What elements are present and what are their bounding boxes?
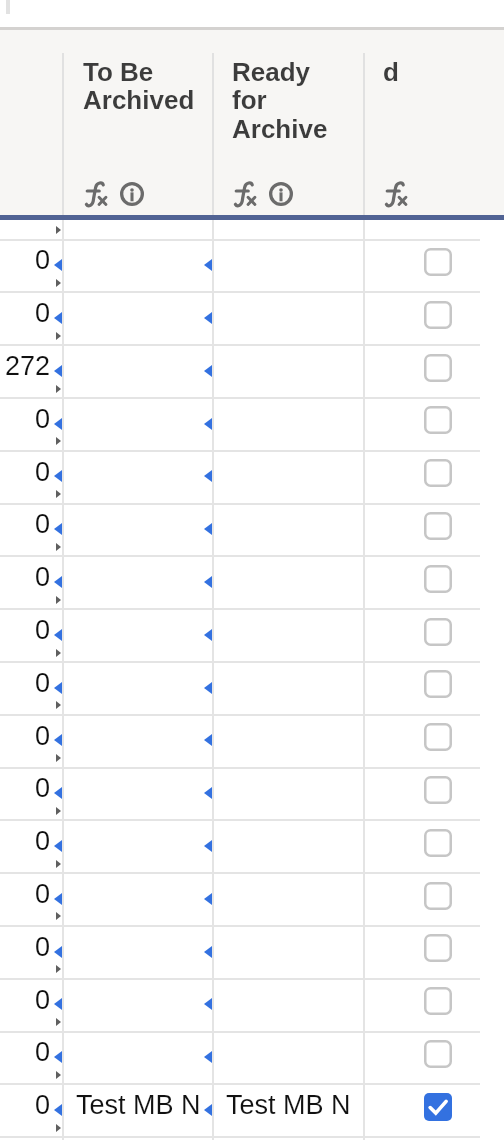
button[interactable]: Checkbox [424,723,452,751]
button[interactable]: Checkbox [424,670,452,698]
button[interactable]: Formula [235,182,256,206]
button[interactable]: Ready for Archive [232,57,328,144]
staticText: Test MB N [76,1090,201,1120]
button[interactable]: Checkbox [424,301,452,329]
staticText: 0 [35,245,51,275]
button[interactable]: Checkbox [424,459,452,487]
button[interactable]: Checkbox [424,248,452,276]
staticText: 0 [35,826,51,856]
button[interactable]: 0 [0,550,51,603]
staticText: 272 [5,351,51,381]
button[interactable]: To Be Archived [83,57,195,115]
staticText: 0 [35,562,51,592]
staticText: 0 [35,298,51,328]
button[interactable]: d [383,57,399,86]
staticText: d [383,57,399,86]
button[interactable]: 0 [0,814,51,867]
button[interactable]: Checkbox [424,882,452,910]
button[interactable]: Checkbox [424,512,452,540]
staticText: 0 [35,457,51,487]
button[interactable]: Checkbox [424,934,452,962]
button[interactable]: 0 [0,656,51,709]
staticText: 0 [35,985,51,1015]
staticText: 0 [35,509,51,539]
staticText: 0 [35,879,51,909]
staticText: 0 [35,721,51,751]
button[interactable]: 0 [0,286,51,339]
button[interactable]: 0 [0,709,51,762]
button[interactable]: 0 [0,233,51,286]
button[interactable]: Checkbox [424,565,452,593]
staticText: 0 [35,668,51,698]
button[interactable]: 0 [0,1025,51,1078]
staticText: 0 [35,404,51,434]
button[interactable]: Information [269,182,293,206]
button[interactable]: Information [120,182,144,206]
staticText: To Be Archived [83,57,195,115]
button[interactable]: Formula [386,182,407,206]
button[interactable]: 0 [0,497,51,550]
staticText: Test MB N [226,1090,351,1120]
staticText: 0 [35,1090,51,1120]
button[interactable]: Checkbox [424,987,452,1015]
button[interactable]: Checkbox [424,1040,452,1068]
staticText: 0 [35,773,51,803]
staticText: 0 [35,615,51,645]
button[interactable]: Checkbox [424,618,452,646]
button[interactable]: 0 [0,392,51,445]
button[interactable]: 0 [0,603,51,656]
button[interactable]: 0 [0,920,51,973]
button[interactable]: Checkbox [424,1093,452,1121]
button[interactable]: Checkbox [424,829,452,857]
button[interactable]: Checkbox [424,354,452,382]
button[interactable]: 272 [0,339,51,392]
button[interactable]: 0 [0,445,51,498]
button[interactable]: Checkbox [424,776,452,804]
staticText: 0 [35,1037,51,1067]
button[interactable]: 0 [0,1078,51,1131]
button[interactable]: Checkbox [424,406,452,434]
staticText: 0 [35,932,51,962]
button[interactable]: 0 [0,973,51,1026]
button[interactable]: Formula [86,182,107,206]
staticText: Ready for Archive [232,57,328,144]
button[interactable]: 0 [0,761,51,814]
button[interactable]: 0 [0,867,51,920]
